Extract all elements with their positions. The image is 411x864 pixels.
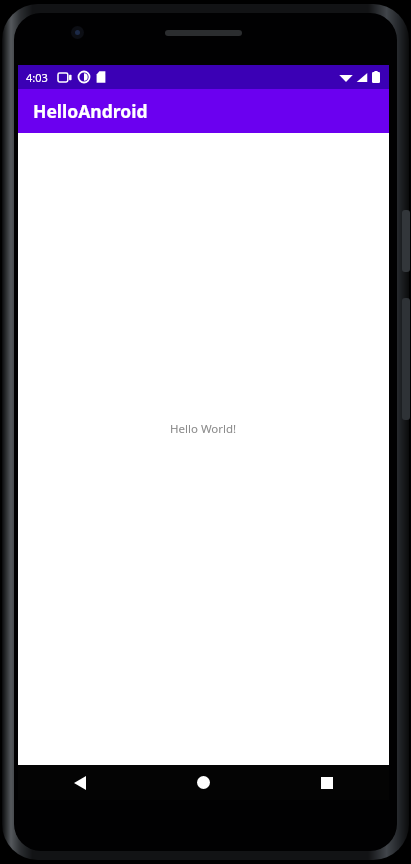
button[interactable]: Back: [18, 765, 141, 800]
button[interactable]: HelloAndroid: [18, 89, 389, 133]
staticText: Hello World!: [170, 421, 237, 437]
button[interactable]: Recent apps: [265, 765, 389, 800]
button[interactable]: Home: [141, 765, 265, 800]
staticText: HelloAndroid: [33, 99, 148, 123]
staticText: 4:03: [26, 70, 48, 85]
